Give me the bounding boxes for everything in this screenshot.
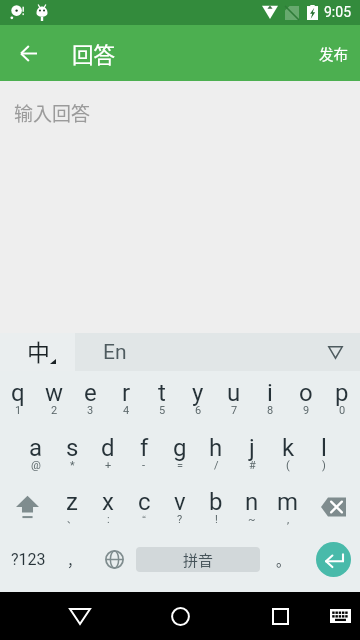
staticText: 2 <box>51 404 58 417</box>
button[interactable]: 。 <box>260 532 306 587</box>
button[interactable]: d <box>90 426 126 481</box>
staticText: 输入回答 <box>14 99 91 127</box>
staticText: 7 <box>231 404 238 417</box>
staticText: i <box>267 379 273 407</box>
button[interactable]: g <box>162 426 198 481</box>
staticText: l <box>321 434 327 462</box>
button[interactable]: En <box>75 333 360 371</box>
staticText: c <box>138 488 151 516</box>
button[interactable]: z <box>54 480 90 535</box>
staticText: m <box>277 488 299 516</box>
staticText: g <box>173 434 187 462</box>
staticText: p <box>335 379 349 407</box>
button[interactable]: 中 <box>0 333 75 371</box>
button[interactable]: Backspace <box>306 480 360 535</box>
staticText: f <box>140 434 149 462</box>
button[interactable]: ?123 <box>0 532 56 587</box>
button[interactable]: ， <box>56 532 92 587</box>
staticText: 发布 <box>319 43 348 64</box>
button[interactable]: q <box>0 371 36 426</box>
button[interactable]: h <box>198 426 234 481</box>
staticText: ~ <box>248 513 256 526</box>
staticText: u <box>227 379 241 407</box>
staticText: 0 <box>339 404 346 417</box>
button[interactable]: 拼音 <box>136 547 260 572</box>
button[interactable]: k <box>270 426 306 481</box>
staticText: 4 <box>123 404 130 417</box>
button[interactable]: Home <box>152 592 208 640</box>
button[interactable]: w <box>36 371 72 426</box>
staticText: 、 <box>67 513 77 526</box>
staticText: ?123 <box>11 550 46 569</box>
button[interactable]: i <box>252 371 288 426</box>
staticText: a <box>29 434 43 462</box>
button[interactable]: Back <box>52 592 108 640</box>
button[interactable]: Back <box>0 25 56 81</box>
button[interactable]: u <box>216 371 252 426</box>
staticText: w <box>45 379 64 407</box>
staticText: 回答 <box>72 38 116 69</box>
button[interactable]: p <box>324 371 360 426</box>
staticText: 6 <box>195 404 202 417</box>
button[interactable]: m <box>270 480 306 535</box>
staticText: @ <box>31 459 41 472</box>
button[interactable]: v <box>162 480 198 535</box>
button[interactable]: y <box>180 371 216 426</box>
staticText: q <box>11 379 25 407</box>
staticText: x <box>102 488 114 516</box>
staticText: d <box>101 434 115 462</box>
staticText: : <box>107 513 110 526</box>
staticText: 3 <box>87 404 94 417</box>
staticText: n <box>245 488 259 516</box>
staticText: k <box>282 434 295 462</box>
staticText: - <box>142 459 146 472</box>
staticText: 。 <box>276 550 290 570</box>
button[interactable]: f <box>126 426 162 481</box>
button[interactable]: Recent apps <box>252 592 308 640</box>
staticText: En <box>103 340 127 365</box>
staticText: 5 <box>159 404 166 417</box>
staticText: ( <box>286 459 290 472</box>
staticText: j <box>249 434 255 462</box>
staticText: 1 <box>15 404 22 417</box>
staticText: ， <box>67 550 81 570</box>
staticText: + <box>105 459 112 472</box>
staticText: h <box>209 434 223 462</box>
staticText: s <box>66 434 79 462</box>
staticText: e <box>84 379 97 407</box>
button[interactable]: c <box>126 480 162 535</box>
button[interactable]: n <box>234 480 270 535</box>
button[interactable]: Expand candidates <box>326 343 344 361</box>
staticText: , <box>287 513 290 526</box>
staticText: b <box>209 488 223 516</box>
staticText: “ <box>142 513 147 526</box>
button[interactable]: l <box>306 426 342 481</box>
staticText: v <box>174 488 186 516</box>
staticText: * <box>70 459 75 472</box>
staticText: o <box>299 379 313 407</box>
button[interactable]: a <box>18 426 54 481</box>
staticText: / <box>214 459 219 472</box>
staticText: ) <box>322 459 326 472</box>
button[interactable]: Switch keyboard <box>318 592 360 640</box>
button[interactable]: x <box>90 480 126 535</box>
staticText: 9 <box>303 404 310 417</box>
button[interactable]: r <box>108 371 144 426</box>
button[interactable]: t <box>144 371 180 426</box>
button[interactable]: e <box>72 371 108 426</box>
button[interactable]: b <box>198 480 234 535</box>
staticText: ! <box>215 513 218 526</box>
button[interactable]: o <box>288 371 324 426</box>
staticText: t <box>158 379 166 407</box>
staticText: r <box>122 379 131 407</box>
staticText: y <box>192 379 204 407</box>
button[interactable]: Change keyboard language <box>92 532 136 587</box>
staticText: z <box>66 488 78 516</box>
button[interactable]: Shift <box>0 480 54 535</box>
button[interactable]: s <box>54 426 90 481</box>
staticText: 8 <box>267 404 274 417</box>
button[interactable]: j <box>234 426 270 481</box>
staticText: ? <box>177 513 183 526</box>
button[interactable]: 发布 <box>303 25 360 81</box>
button[interactable]: Enter <box>316 542 351 577</box>
